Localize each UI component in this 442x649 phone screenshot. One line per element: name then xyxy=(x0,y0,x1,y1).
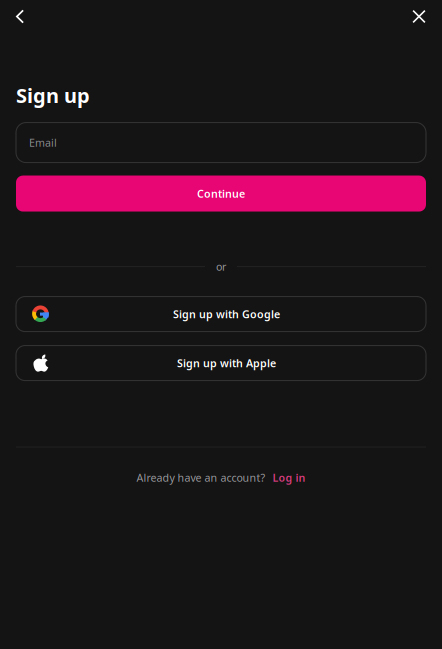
staticText: Sign up with Google xyxy=(173,307,280,321)
button[interactable]: Back xyxy=(7,3,33,29)
staticText: Continue xyxy=(197,186,245,201)
staticText: Already have an account? xyxy=(136,471,265,485)
button[interactable]: Continue xyxy=(16,176,426,212)
staticText: or xyxy=(216,259,226,274)
button[interactable]: Close xyxy=(406,3,432,30)
staticText: Email xyxy=(29,135,57,150)
button[interactable]: Log in xyxy=(265,471,305,485)
staticText: Log in xyxy=(272,471,305,485)
button[interactable]: Sign up with Apple xyxy=(16,346,426,381)
button[interactable]: Sign up with Google xyxy=(16,297,426,332)
staticText: Sign up xyxy=(16,82,90,109)
staticText: Sign up with Apple xyxy=(177,356,276,370)
